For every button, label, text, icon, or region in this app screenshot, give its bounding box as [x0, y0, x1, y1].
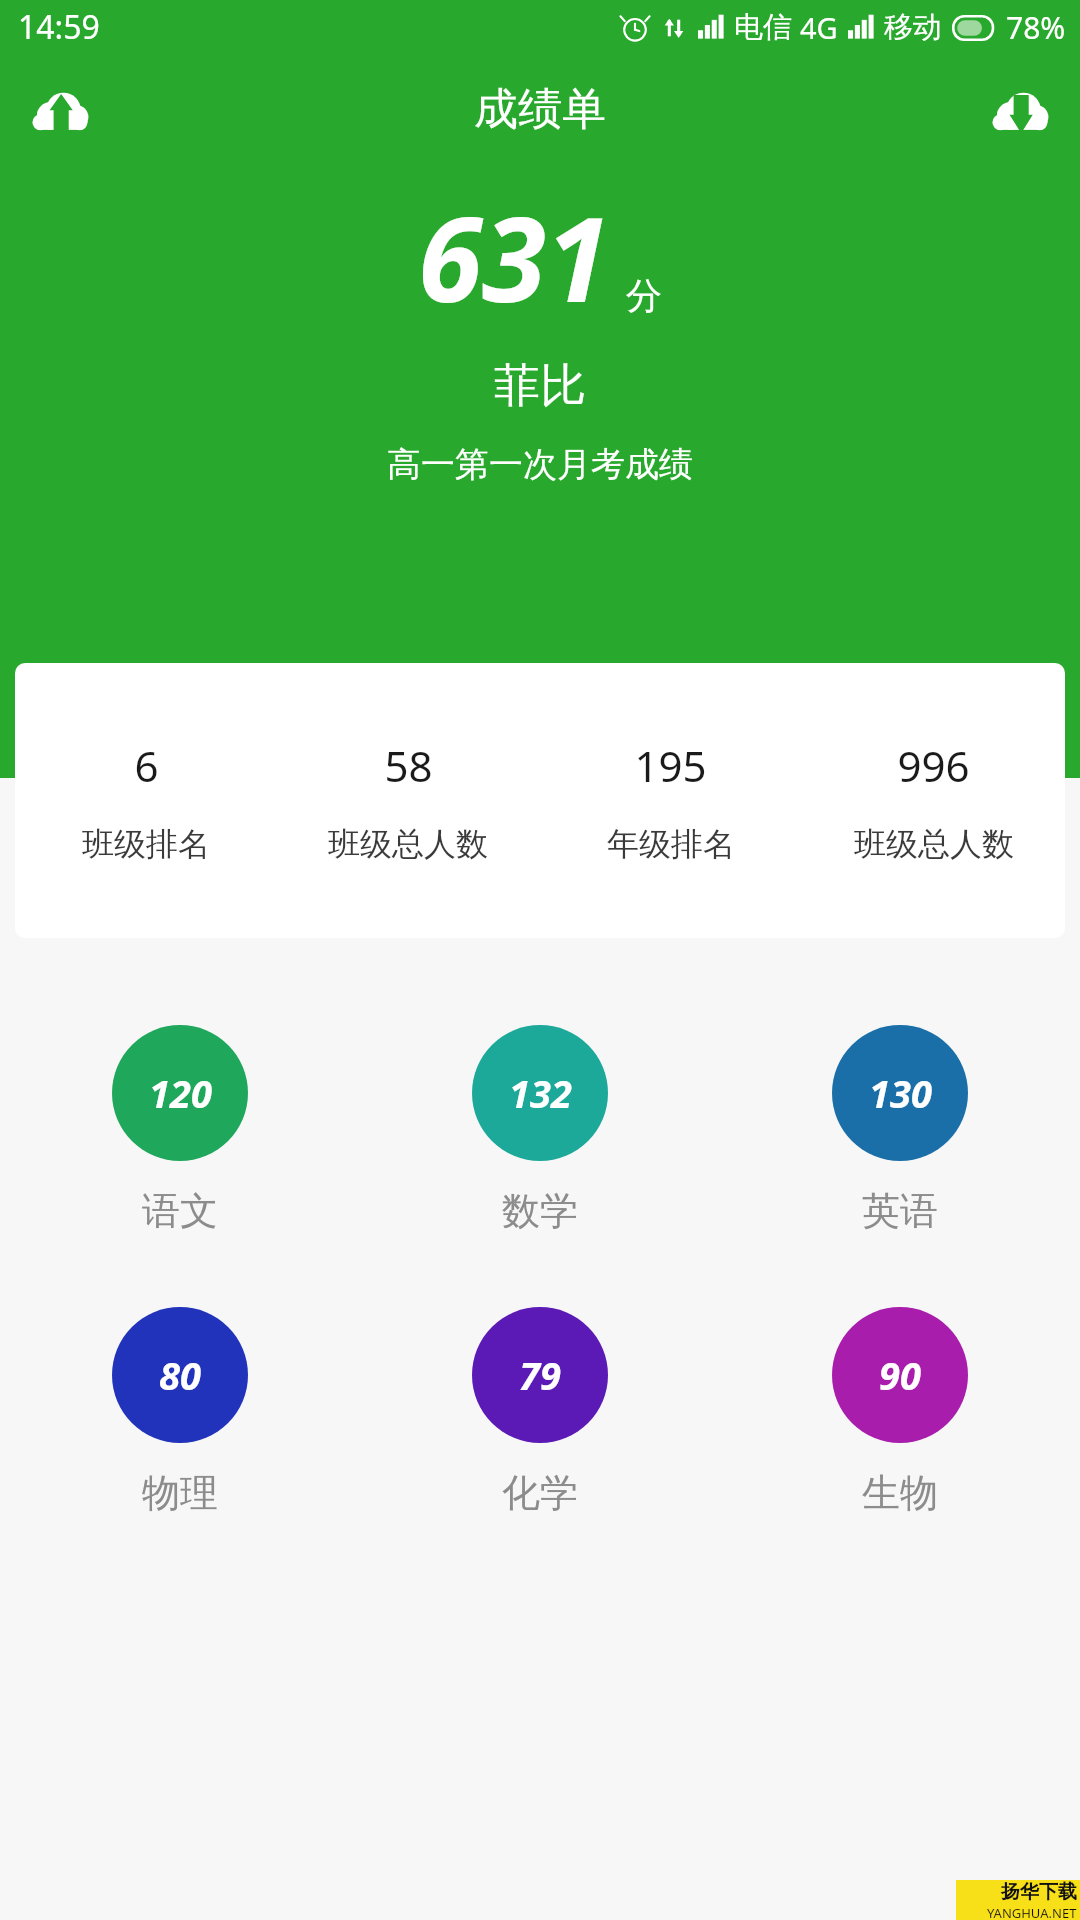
- staticText: 130: [869, 1067, 932, 1119]
- staticText: 631: [418, 178, 610, 336]
- staticText: 分: [626, 273, 662, 318]
- button[interactable]: 80: [0, 1307, 360, 1517]
- button[interactable]: 130: [720, 1025, 1080, 1235]
- staticText: 120: [149, 1067, 212, 1119]
- staticText: 79: [519, 1349, 561, 1401]
- button[interactable]: 6: [15, 663, 277, 938]
- staticText: 班级总人数: [328, 824, 488, 864]
- staticText: 58: [384, 737, 433, 794]
- staticText: 195: [634, 737, 707, 794]
- staticText: 化学: [502, 1469, 578, 1517]
- button[interactable]: 195: [539, 663, 802, 938]
- staticText: 数学: [502, 1187, 578, 1235]
- staticText: 132: [509, 1067, 572, 1119]
- button[interactable]: 58: [277, 663, 539, 938]
- staticText: 高一第一次月考成绩: [387, 443, 693, 486]
- staticText: 英语: [862, 1187, 938, 1235]
- staticText: 菲比: [494, 357, 586, 415]
- staticText: YANGHUA.NET: [987, 1904, 1077, 1920]
- staticText: 14:59: [18, 5, 100, 49]
- staticText: 4G: [800, 8, 838, 47]
- staticText: 电信: [734, 9, 792, 46]
- staticText: 生物: [862, 1469, 938, 1517]
- button[interactable]: 79: [360, 1307, 720, 1517]
- button[interactable]: Download grades: [980, 69, 1060, 149]
- staticText: 90: [879, 1349, 921, 1401]
- staticText: 移动: [884, 9, 942, 46]
- staticText: 语文: [142, 1187, 218, 1235]
- button[interactable]: 90: [720, 1307, 1080, 1517]
- staticText: 物理: [142, 1469, 218, 1517]
- staticText: 班级总人数: [854, 824, 1014, 864]
- staticText: 年级排名: [607, 824, 735, 864]
- staticText: 78%: [1006, 7, 1066, 48]
- staticText: 扬华下载: [1001, 1880, 1077, 1904]
- button[interactable]: 996: [802, 663, 1065, 938]
- staticText: 6: [134, 737, 159, 794]
- staticText: 80: [159, 1349, 201, 1401]
- button[interactable]: Upload grades: [20, 69, 100, 149]
- button[interactable]: 132: [360, 1025, 720, 1235]
- staticText: 班级排名: [82, 824, 210, 864]
- button[interactable]: 120: [0, 1025, 360, 1235]
- staticText: 成绩单: [474, 82, 606, 137]
- staticText: 996: [897, 737, 970, 794]
